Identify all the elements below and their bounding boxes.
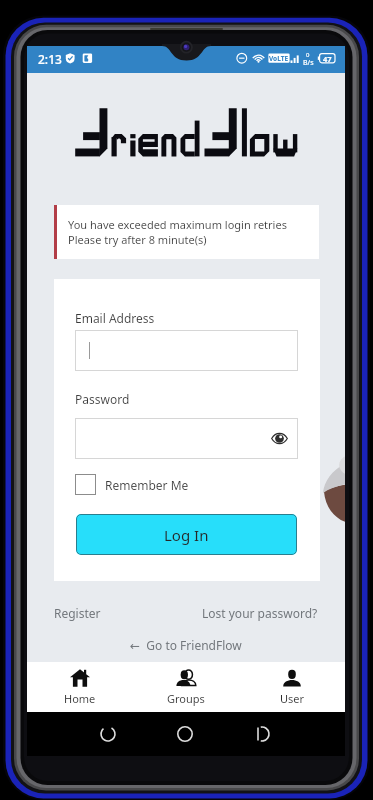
button[interactable]: Register: [54, 605, 101, 621]
button[interactable]: Show password: [271, 430, 288, 447]
button[interactable]: Remember Me: [75, 474, 189, 495]
staticText: VoLTE: [269, 54, 289, 63]
button[interactable]: Home: [27, 662, 133, 712]
button[interactable]: [75, 330, 298, 371]
staticText: Password: [75, 391, 130, 407]
staticText: Please try after 8 minute(s): [68, 232, 207, 247]
button[interactable]: Log In: [76, 514, 297, 555]
staticText: You have exceeded maximum login retries: [68, 217, 287, 232]
staticText: 47: [323, 54, 332, 64]
button[interactable]: Lost your password?: [202, 605, 318, 621]
staticText: Groups: [167, 691, 205, 706]
staticText: B/s: [303, 58, 314, 68]
staticText: User: [280, 691, 305, 706]
button[interactable]: User: [239, 662, 345, 712]
staticText: Remember Me: [105, 477, 189, 493]
staticText: Email Address: [75, 310, 155, 326]
staticText: Home: [64, 691, 96, 706]
staticText: Log In: [164, 525, 209, 545]
button[interactable]: Show password: [75, 418, 298, 459]
button[interactable]: Groups: [133, 662, 239, 712]
staticText: 0: [306, 51, 310, 59]
staticText: 2:13: [38, 51, 62, 67]
button[interactable]: ← Go to FriendFlow: [130, 637, 242, 653]
